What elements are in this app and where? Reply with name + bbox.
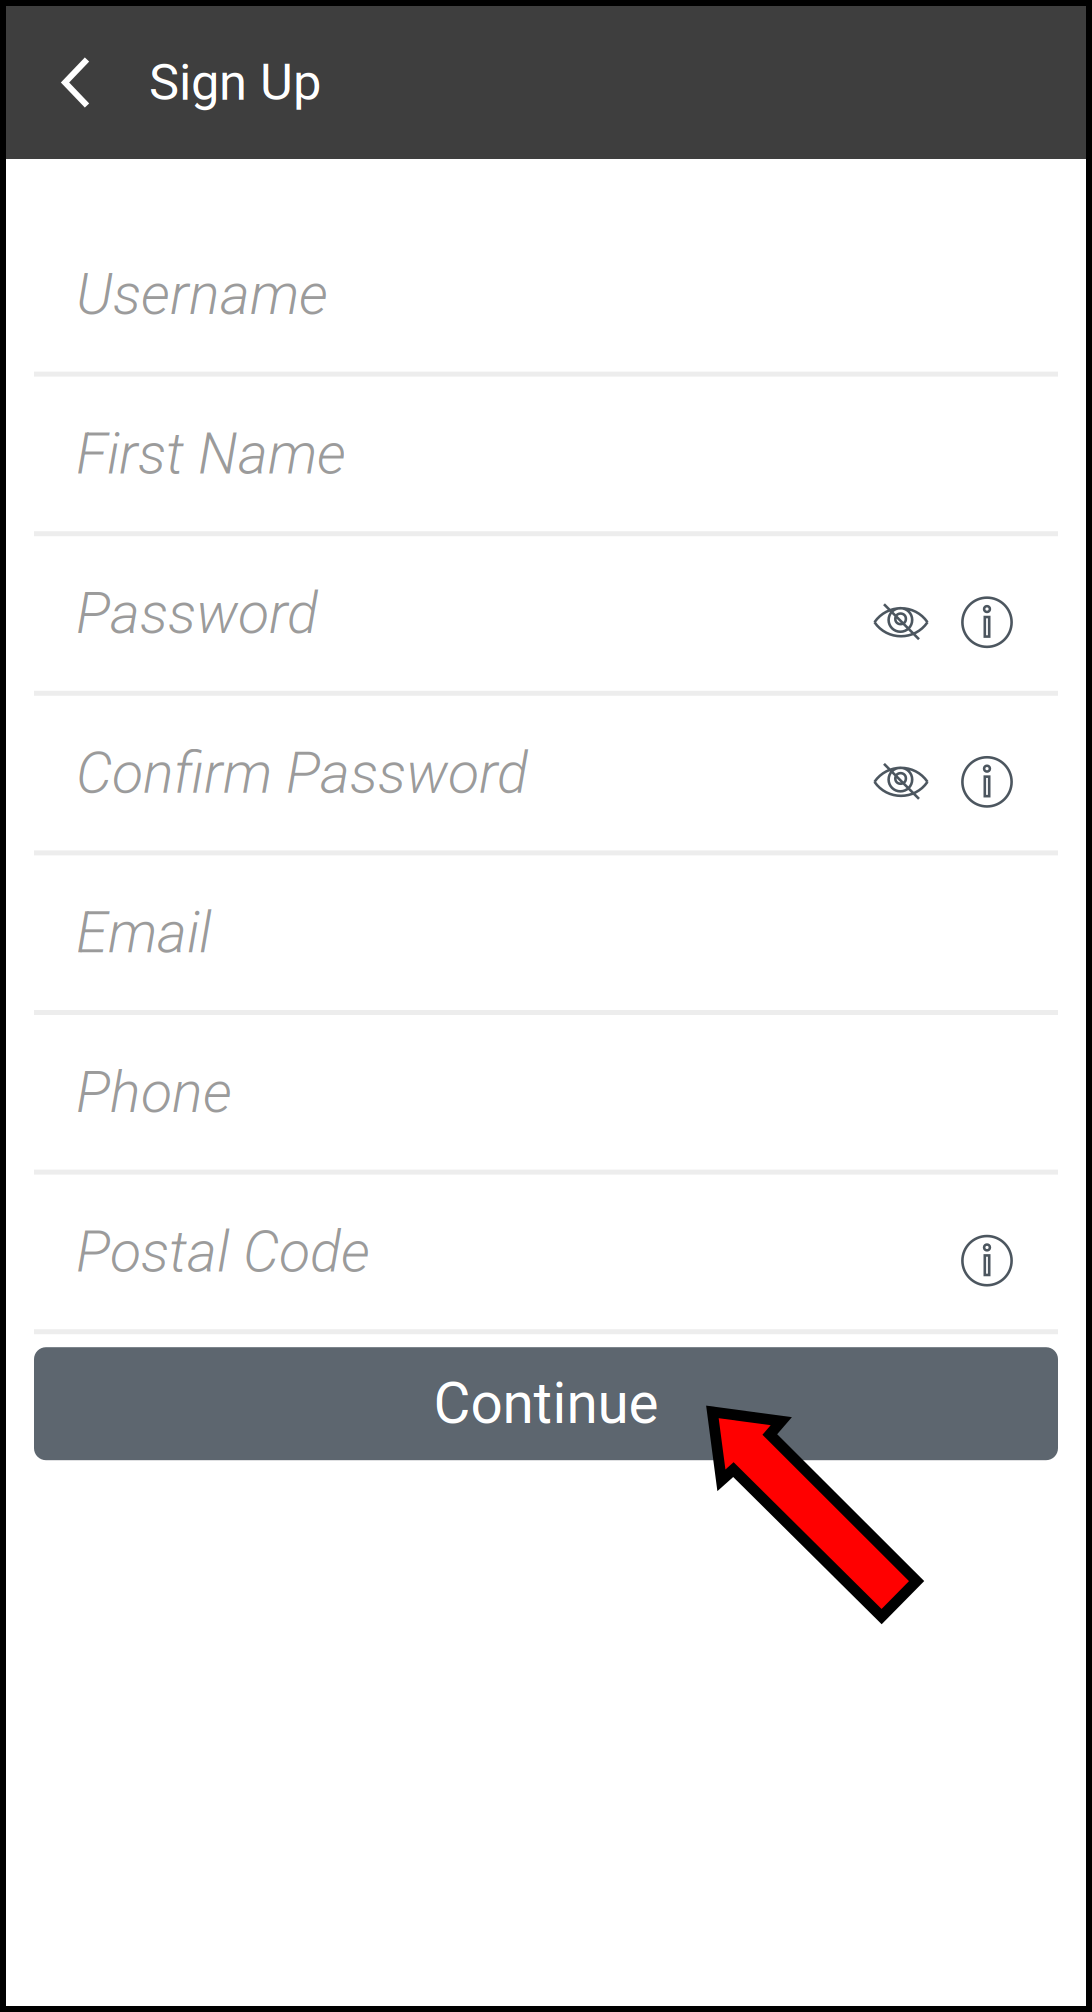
button[interactable]: Back [6, 6, 150, 159]
staticText: Username [76, 261, 328, 328]
staticText: Password [76, 580, 318, 647]
button[interactable]: Show Confirm Password [864, 745, 938, 819]
staticText: Postal Code [76, 1218, 370, 1285]
button[interactable]: About Confirm Password [950, 745, 1024, 819]
button[interactable]: Show Password [864, 585, 938, 659]
button[interactable]: About Password [950, 585, 1024, 659]
staticText: Email [76, 899, 211, 966]
staticText: Sign Up [149, 53, 321, 112]
staticText: Phone [76, 1059, 232, 1126]
button[interactable]: Continue [34, 1347, 1058, 1460]
staticText: Continue [433, 1370, 658, 1437]
staticText: First Name [76, 420, 346, 487]
button[interactable]: About Postal Code [950, 1224, 1024, 1298]
staticText: Confirm Password [76, 739, 528, 807]
